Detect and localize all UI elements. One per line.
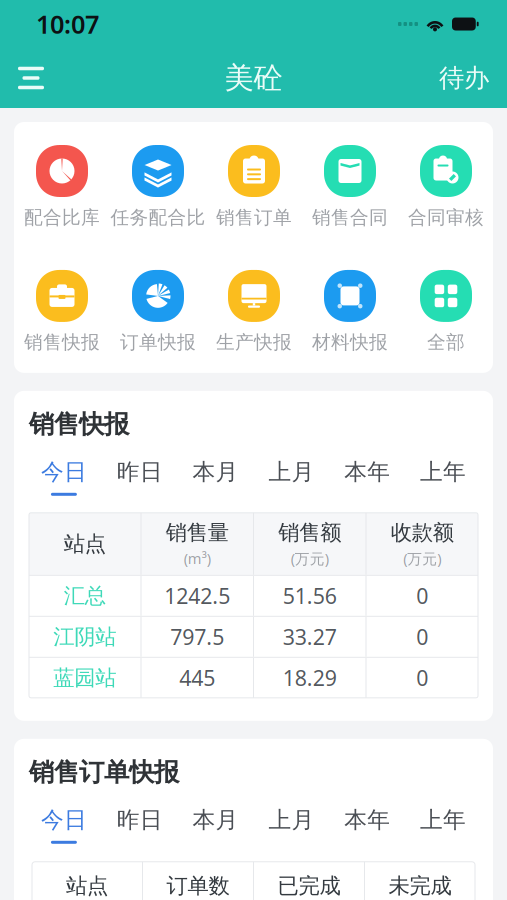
button[interactable]: 全部 [398,270,494,354]
staticText: 本月 [193,458,239,486]
staticText: 全部 [427,331,465,354]
button[interactable]: 今日 [26,458,102,496]
staticText: 配合比库 [24,206,100,229]
staticText: 订单数 [166,873,229,899]
button[interactable]: 上月 [253,458,329,496]
staticText: 0 [416,582,428,610]
staticText: 上年 [420,458,466,486]
staticText: 10:07 [36,7,99,41]
staticText: 合同审核 [408,206,484,229]
button[interactable]: 本月 [178,458,253,496]
button[interactable]: 本年 [329,458,405,496]
staticText: 上月 [268,458,314,486]
staticText: 销售订单 [216,206,292,229]
staticText: 昨日 [117,458,163,486]
button[interactable]: 上年 [405,806,481,844]
staticText: 美砼 [224,60,282,96]
button[interactable]: Menu [18,52,70,104]
staticText: 上月 [268,806,314,834]
button[interactable]: 销售快报 [14,270,110,354]
button[interactable]: 材料快报 [302,270,398,354]
staticText: 1242.5 [164,582,230,610]
staticText: 0 [416,664,428,692]
staticText: (万元) [403,549,441,568]
button[interactable]: 本年 [329,806,405,844]
staticText: 445 [179,664,215,692]
button[interactable]: 昨日 [102,806,178,844]
staticText: 订单快报 [120,331,196,354]
staticText: 已完成 [277,873,340,899]
staticText: 销售合同 [312,206,388,229]
button[interactable]: 上年 [405,458,481,496]
staticText: 33.27 [283,623,337,651]
staticText: 收款额 [391,519,454,546]
staticText: 本年 [344,458,390,486]
button[interactable]: 上月 [253,806,329,844]
staticText: 站点 [64,531,106,557]
staticText: 销售快报 [24,331,100,354]
staticText: 生产快报 [216,331,292,354]
staticText: 797.5 [170,623,224,651]
staticText: 昨日 [117,806,163,834]
staticText: 本年 [344,806,390,834]
staticText: (m³) [184,549,211,568]
staticText: 汇总 [64,583,106,609]
staticText: 江阴站 [53,624,116,650]
staticText: 材料快报 [312,331,388,354]
staticText: 本月 [193,806,239,834]
staticText: 销售快报 [29,409,129,440]
button[interactable]: 销售订单 [206,145,302,229]
staticText: 18.29 [283,664,337,692]
button[interactable]: 任务配合比 [110,145,206,229]
button[interactable]: 本月 [178,806,253,844]
button[interactable]: 生产快报 [206,270,302,354]
staticText: 销售量 [166,519,229,546]
staticText: 销售订单快报 [29,757,179,788]
staticText: 任务配合比 [110,206,205,229]
staticText: 站点 [66,873,108,899]
staticText: 蓝园站 [53,665,116,691]
staticText: 待办 [439,62,489,93]
button[interactable]: 今日 [26,806,102,844]
staticText: 今日 [41,806,87,834]
button[interactable]: 待办 [437,52,489,104]
staticText: 销售额 [278,519,341,546]
staticText: (万元) [291,549,329,568]
button[interactable]: 订单快报 [110,270,206,354]
button[interactable]: 销售合同 [302,145,398,229]
staticText: 今日 [41,458,87,486]
button[interactable]: 合同审核 [398,145,494,229]
staticText: 上年 [420,806,466,834]
button[interactable]: 昨日 [102,458,178,496]
staticText: 未完成 [388,873,451,899]
staticText: 51.56 [283,582,337,610]
button[interactable]: 配合比库 [14,145,110,229]
staticText: 0 [416,623,428,651]
